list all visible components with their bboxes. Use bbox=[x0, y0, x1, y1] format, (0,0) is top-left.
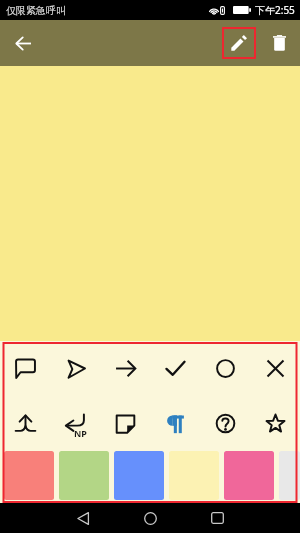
button[interactable]: help bbox=[200, 396, 250, 451]
button[interactable]: cross bbox=[250, 341, 300, 396]
button[interactable]: Colour 6 bbox=[279, 451, 300, 500]
button[interactable]: Colour 3 bbox=[114, 451, 164, 500]
staticText: NP bbox=[74, 427, 87, 439]
button[interactable]: Home bbox=[130, 503, 170, 533]
button[interactable]: Edit bbox=[222, 27, 256, 59]
staticText: 下午2:55 bbox=[255, 3, 295, 17]
button[interactable]: circle bbox=[200, 341, 250, 396]
button[interactable]: arrow bbox=[100, 341, 150, 396]
button[interactable]: bubble bbox=[0, 341, 50, 396]
button[interactable]: star bbox=[250, 396, 300, 451]
button[interactable]: check bbox=[150, 341, 200, 396]
button[interactable]: Back bbox=[63, 503, 103, 533]
button[interactable]: Recents bbox=[197, 503, 237, 533]
button[interactable]: np bbox=[50, 396, 100, 451]
button[interactable]: Back bbox=[7, 27, 40, 60]
button[interactable]: Colour 1 bbox=[4, 451, 54, 500]
button[interactable]: send bbox=[50, 341, 100, 396]
button[interactable]: note bbox=[100, 396, 150, 451]
staticText: 仅限紧急呼叫 bbox=[6, 4, 66, 17]
button[interactable]: insert bbox=[0, 396, 50, 451]
button[interactable]: Delete bbox=[264, 28, 294, 58]
button[interactable]: Colour 5 bbox=[224, 451, 274, 500]
button[interactable]: pilcrow bbox=[150, 396, 200, 451]
